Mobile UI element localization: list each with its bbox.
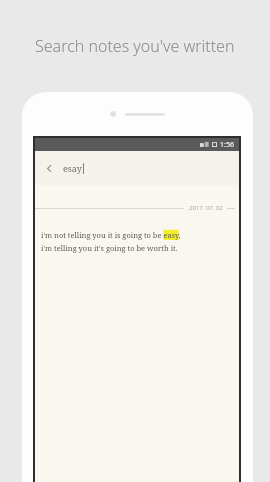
staticText: esay bbox=[63, 162, 82, 174]
staticText: Search notes you've written bbox=[35, 35, 235, 57]
staticText: i'm telling you it's going to be worth i… bbox=[41, 243, 178, 253]
staticText: 1:56 bbox=[220, 140, 234, 150]
button[interactable]: Back bbox=[41, 160, 57, 176]
staticText: 2017. 07. 02 bbox=[189, 204, 223, 212]
staticText: i'm not telling you it is going to be ea… bbox=[41, 230, 181, 240]
button[interactable]: Back bbox=[35, 151, 239, 185]
